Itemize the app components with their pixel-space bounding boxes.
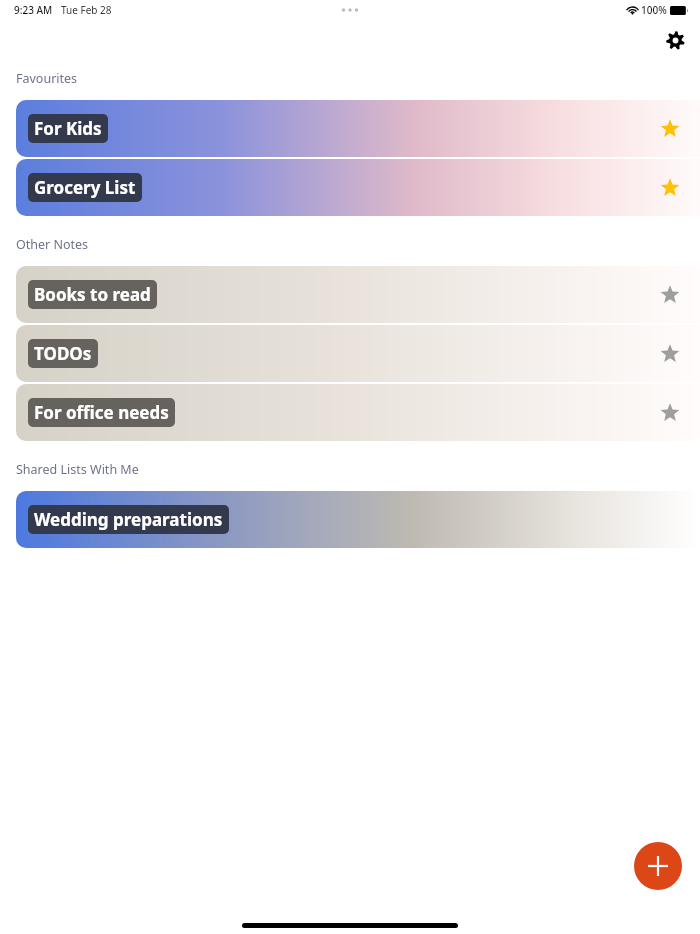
staticText: For office needs <box>34 401 169 424</box>
button[interactable]: TODOs <box>16 325 700 382</box>
button[interactable]: Grocery List <box>16 159 700 216</box>
staticText: Favourites <box>16 70 78 87</box>
button[interactable]: For office needs <box>16 384 700 441</box>
staticText: 100% <box>641 3 667 17</box>
staticText: Wedding preparations <box>34 508 223 531</box>
button[interactable]: Books to read <box>16 266 700 323</box>
staticText: Books to read <box>34 283 151 306</box>
staticText: Shared Lists With Me <box>16 461 139 478</box>
staticText: 9:23 AM <box>14 3 53 17</box>
button[interactable]: Add new list <box>634 842 682 890</box>
staticText: Other Notes <box>16 236 89 253</box>
staticText: Tue Feb 28 <box>61 3 112 17</box>
button[interactable]: Wedding preparations <box>16 491 700 548</box>
staticText: Grocery List <box>34 176 136 199</box>
button[interactable]: For Kids <box>16 100 700 157</box>
staticText: For Kids <box>34 117 102 140</box>
button[interactable]: Settings <box>660 25 690 55</box>
staticText: TODOs <box>34 342 92 365</box>
